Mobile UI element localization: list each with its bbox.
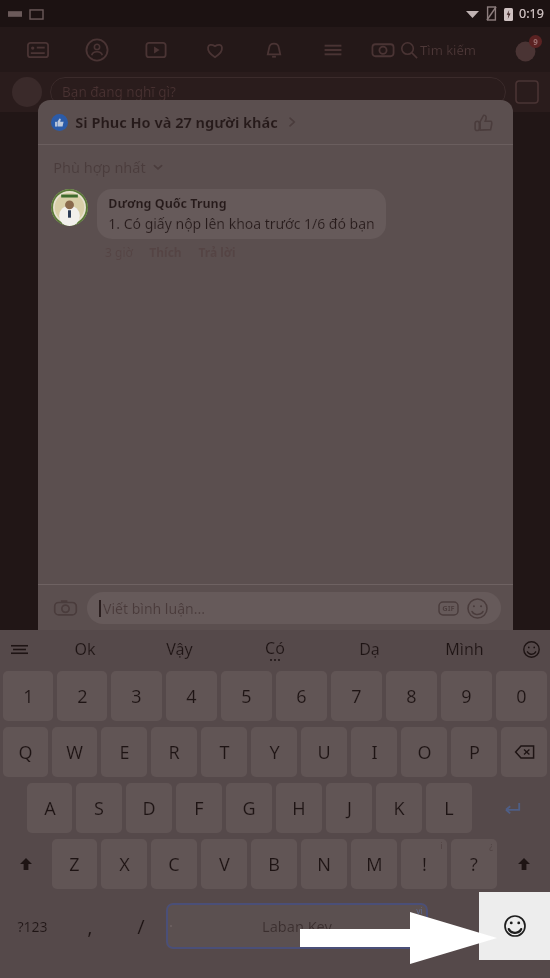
staticText: 4 bbox=[186, 684, 197, 709]
button[interactable]: 8 bbox=[386, 671, 437, 721]
button[interactable]: Trả lời bbox=[198, 244, 236, 260]
staticText: Ok bbox=[74, 638, 96, 660]
button[interactable]: 7 bbox=[331, 671, 382, 721]
button[interactable]: B bbox=[251, 839, 297, 889]
button[interactable]: Shift bbox=[3, 839, 48, 889]
button[interactable]: Si Phuc Ho và 27 người khác bbox=[38, 100, 513, 144]
button[interactable]: Phù hợp nhất bbox=[51, 153, 166, 181]
button[interactable]: 4 bbox=[166, 671, 217, 721]
button[interactable]: Z bbox=[52, 839, 97, 889]
button[interactable]: 9 bbox=[441, 671, 492, 721]
button[interactable]: A bbox=[27, 783, 72, 833]
staticText: S bbox=[94, 796, 104, 821]
button[interactable]: Dương Quốc Trung bbox=[38, 189, 513, 260]
button[interactable]: Ok bbox=[38, 630, 132, 668]
button[interactable]: Q bbox=[3, 727, 48, 777]
button[interactable]: Biểu tượng cảm xúc bbox=[479, 892, 550, 960]
staticText: V bbox=[219, 852, 230, 877]
button[interactable]: R bbox=[151, 727, 197, 777]
button[interactable]: T bbox=[201, 727, 247, 777]
staticText: Vậy bbox=[166, 638, 193, 660]
staticText: P bbox=[469, 740, 480, 765]
staticText: I bbox=[371, 740, 378, 765]
staticText: 2 bbox=[77, 684, 88, 709]
button[interactable]: J bbox=[326, 783, 372, 833]
staticText: ? bbox=[470, 852, 478, 877]
staticText: G bbox=[242, 796, 256, 821]
button[interactable]: Biểu tượng cảm xúc bbox=[512, 630, 550, 668]
button[interactable]: ! bbox=[401, 839, 447, 889]
button[interactable]: Laban Key bbox=[166, 903, 428, 949]
button[interactable]: Shift phải bbox=[501, 839, 547, 889]
button[interactable]: GIF bbox=[437, 597, 459, 619]
button[interactable]: Dạ bbox=[322, 630, 417, 668]
button[interactable]: Mình bbox=[417, 630, 512, 668]
staticText: 3 bbox=[131, 684, 142, 709]
button[interactable]: P bbox=[451, 727, 497, 777]
button[interactable]: S bbox=[76, 783, 122, 833]
button[interactable]: 3 bbox=[111, 671, 162, 721]
button[interactable]: Thích bbox=[466, 105, 500, 139]
button[interactable]: I bbox=[351, 727, 397, 777]
staticText: 1. Có giấy nộp lên khoa trước 1/6 đó bạn bbox=[108, 214, 375, 233]
button[interactable]: ? bbox=[451, 839, 497, 889]
staticText: Q bbox=[18, 740, 33, 765]
button[interactable]: E bbox=[101, 727, 147, 777]
staticText: B bbox=[268, 852, 280, 877]
staticText: Mình bbox=[445, 638, 484, 660]
button[interactable]: Y bbox=[251, 727, 297, 777]
staticText: R bbox=[168, 740, 180, 765]
button[interactable]: / bbox=[115, 892, 166, 960]
button[interactable]: X bbox=[101, 839, 147, 889]
staticText: Viết bình luận... bbox=[103, 599, 205, 618]
staticText: Tìm kiếm bbox=[420, 41, 476, 59]
button[interactable]: K bbox=[376, 783, 422, 833]
button[interactable]: O bbox=[401, 727, 447, 777]
button[interactable]: Cài đặt bàn phím bbox=[0, 630, 38, 668]
staticText: 6 bbox=[296, 684, 307, 709]
button[interactable]: F bbox=[176, 783, 222, 833]
button[interactable]: Viết bình luận... bbox=[87, 592, 501, 624]
button[interactable]: G bbox=[226, 783, 272, 833]
staticText: 0:19 bbox=[519, 5, 544, 22]
button[interactable]: Biểu tượng cảm xúc bbox=[465, 596, 489, 620]
button[interactable]: Có bbox=[227, 630, 322, 668]
staticText: ! bbox=[422, 852, 427, 877]
button[interactable]: 2 bbox=[57, 671, 107, 721]
staticText: H bbox=[292, 796, 306, 821]
staticText: GIF bbox=[442, 603, 455, 613]
staticText: F bbox=[194, 796, 204, 821]
staticText: E bbox=[119, 740, 130, 765]
staticText: L bbox=[444, 796, 454, 821]
button[interactable]: Thích bbox=[149, 244, 182, 260]
button[interactable]: 5 bbox=[221, 671, 272, 721]
button[interactable]: W bbox=[52, 727, 97, 777]
staticText: U bbox=[317, 740, 331, 765]
button[interactable]: Vậy bbox=[132, 630, 227, 668]
button[interactable]: M bbox=[351, 839, 397, 889]
staticText: 5 bbox=[241, 684, 252, 709]
staticText: Bạn đang nghĩ gì? bbox=[62, 83, 176, 101]
button[interactable]: 0 bbox=[496, 671, 547, 721]
button[interactable]: 1 bbox=[3, 671, 53, 721]
staticText: 1 bbox=[23, 684, 34, 709]
staticText: 3 giờ bbox=[105, 244, 133, 260]
button[interactable]: ?123 bbox=[0, 892, 64, 960]
button[interactable]: L bbox=[426, 783, 472, 833]
button[interactable]: U bbox=[301, 727, 347, 777]
button[interactable]: Xóa bbox=[501, 727, 547, 777]
button[interactable]: C bbox=[151, 839, 197, 889]
button[interactable]: 6 bbox=[276, 671, 327, 721]
staticText: Z bbox=[69, 852, 80, 877]
button[interactable]: N bbox=[301, 839, 347, 889]
staticText: 7 bbox=[351, 684, 362, 709]
staticText: X bbox=[119, 852, 130, 877]
button[interactable]: Máy ảnh bbox=[50, 593, 80, 623]
button[interactable]: . bbox=[428, 892, 479, 960]
button[interactable]: V bbox=[201, 839, 247, 889]
button[interactable]: H bbox=[276, 783, 322, 833]
button[interactable]: Enter bbox=[476, 783, 547, 833]
staticText: 0 bbox=[516, 684, 527, 709]
button[interactable]: D bbox=[126, 783, 172, 833]
